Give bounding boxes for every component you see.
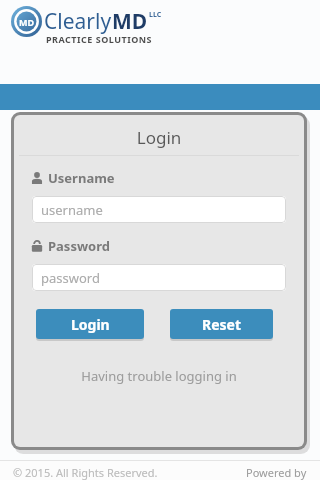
staticText: Clearly: [44, 7, 112, 36]
button[interactable]: Login: [36, 309, 144, 339]
staticText: PRACTICE SOLUTIONS: [46, 33, 153, 45]
button[interactable]: username: [32, 196, 286, 223]
staticText: Username: [48, 169, 115, 187]
staticText: Password: [48, 237, 110, 255]
staticText: Login: [14, 126, 304, 149]
staticText: © 2015. All Rights Reserved.: [13, 465, 158, 480]
staticText: Login: [71, 315, 110, 334]
staticText: MD: [19, 16, 35, 28]
staticText: password: [41, 269, 100, 287]
staticText: LLC: [149, 10, 162, 20]
button[interactable]: Reset: [170, 309, 273, 339]
staticText: Reset: [202, 315, 242, 334]
button[interactable]: Having trouble logging in: [14, 365, 304, 387]
staticText: Powered by: [246, 465, 307, 480]
staticText: Having trouble logging in: [14, 367, 304, 385]
staticText: MD: [112, 7, 148, 36]
button[interactable]: password: [32, 264, 286, 291]
staticText: username: [41, 201, 103, 219]
